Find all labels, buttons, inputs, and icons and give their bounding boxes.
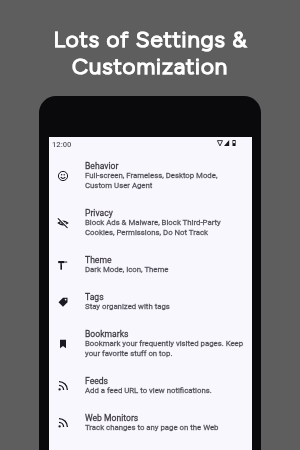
staticText: Track changes to any page on the Web (85, 423, 219, 432)
staticText: 12:00 (52, 140, 72, 149)
staticText: Bookmark your frequently visited pages. … (85, 339, 245, 358)
button[interactable]: Bookmarks (49, 320, 252, 367)
staticText: Customization (72, 53, 228, 80)
button[interactable]: Tags (49, 283, 252, 320)
staticText: Block Ads & Malware, Block Third-Party C… (85, 218, 245, 237)
staticText: Behavior (85, 161, 119, 171)
staticText: Full-screen, Frameless, Desktop Mode, Cu… (85, 171, 245, 190)
staticText: Customization (72, 53, 228, 80)
staticText: Theme (85, 255, 112, 265)
staticText: Theme (85, 255, 112, 265)
staticText: Bookmarks (85, 329, 129, 339)
staticText: Dark Mode, Icon, Theme (85, 265, 169, 274)
staticText: Feeds (85, 376, 109, 386)
staticText: Tags (85, 292, 104, 302)
staticText: Stay organized with tags (85, 302, 170, 311)
staticText: Privacy (85, 208, 113, 218)
staticText: Tags (85, 292, 104, 302)
staticText: Privacy (85, 208, 113, 218)
staticText: Lots of Settings & (53, 26, 248, 53)
staticText: Bookmarks (85, 329, 129, 339)
staticText: Lots of Settings & (53, 26, 248, 53)
staticText: Web Monitors (85, 413, 139, 423)
staticText: Add a feed URL to view notifications. (85, 386, 212, 395)
staticText: Full-screen, Frameless, Desktop Mode, Cu… (85, 171, 245, 190)
button[interactable]: Behavior (49, 152, 252, 199)
button[interactable]: Feeds (49, 367, 252, 404)
button[interactable]: Theme (49, 246, 252, 283)
staticText: Track changes to any page on the Web (85, 423, 219, 432)
staticText: Bookmark your frequently visited pages. … (85, 339, 245, 358)
staticText: Add a feed URL to view notifications. (85, 386, 212, 395)
staticText: Stay organized with tags (85, 302, 170, 311)
staticText: Web Monitors (85, 413, 139, 423)
button[interactable]: Privacy (49, 199, 252, 246)
staticText: Block Ads & Malware, Block Third-Party C… (85, 218, 245, 237)
staticText: Behavior (85, 161, 119, 171)
staticText: Feeds (85, 376, 109, 386)
button[interactable]: Web Monitors (49, 404, 252, 441)
staticText: Dark Mode, Icon, Theme (85, 265, 169, 274)
